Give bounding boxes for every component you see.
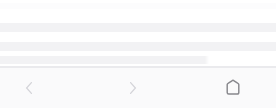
- button[interactable]: Home: [217, 71, 249, 103]
- button[interactable]: Forward: [117, 72, 149, 104]
- button[interactable]: Back: [13, 72, 45, 104]
